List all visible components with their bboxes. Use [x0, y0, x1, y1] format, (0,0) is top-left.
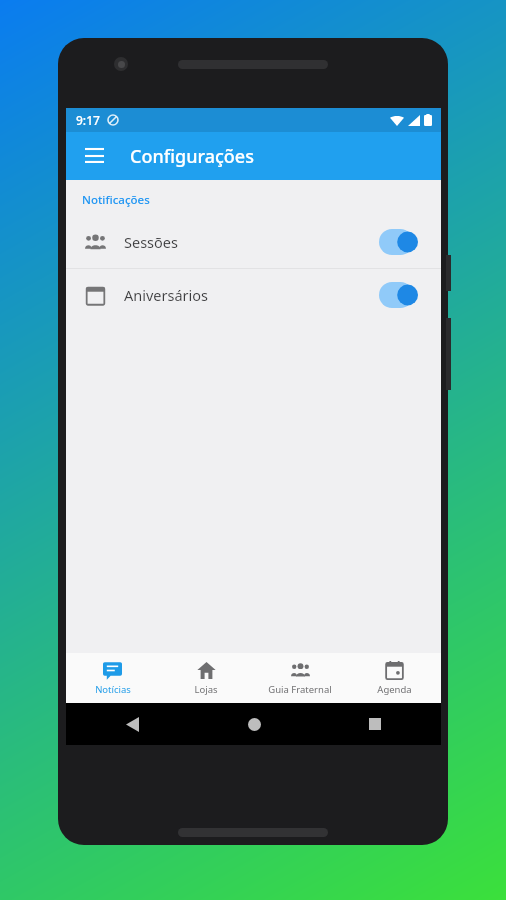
staticText: 9:17 — [76, 112, 100, 128]
button[interactable]: Agenda — [347, 653, 441, 703]
staticText: Guia Fraternal — [268, 683, 332, 696]
button[interactable]: Recent apps — [361, 710, 389, 738]
staticText: Agenda — [377, 683, 412, 696]
staticText: Sessões — [124, 232, 178, 252]
staticText: Notificações — [82, 192, 150, 208]
staticText: Lojas — [194, 683, 218, 696]
button[interactable]: Aniversários — [66, 269, 441, 321]
button[interactable]: Open navigation menu — [74, 136, 114, 176]
button[interactable]: Guia Fraternal — [253, 653, 347, 703]
button[interactable]: Notícias — [66, 653, 159, 703]
staticText: Configurações — [130, 144, 254, 169]
staticText: Aniversários — [124, 285, 209, 305]
button[interactable]: Home — [240, 710, 268, 738]
button[interactable]: Lojas — [159, 653, 253, 703]
button[interactable]: Sessões — [66, 216, 441, 268]
button[interactable]: Back — [118, 710, 146, 738]
staticText: Notícias — [95, 683, 131, 696]
